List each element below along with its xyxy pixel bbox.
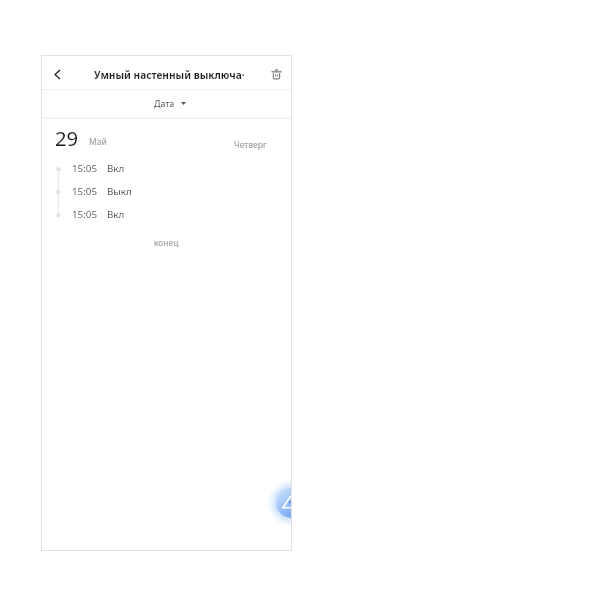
- staticText: Вкл: [107, 162, 125, 175]
- button[interactable]: 15:05: [42, 179, 291, 200]
- button[interactable]: Дата: [42, 91, 291, 118]
- staticText: Вкл: [107, 208, 125, 221]
- staticText: конец: [154, 237, 179, 249]
- button[interactable]: 15:05: [42, 156, 291, 177]
- staticText: Четверг: [234, 139, 267, 151]
- staticText: Дата: [154, 98, 175, 110]
- button[interactable]: Delete: [263, 61, 289, 87]
- button[interactable]: Add schedule: [276, 488, 291, 518]
- staticText: Май: [89, 136, 107, 148]
- staticText: 15:05: [72, 162, 98, 175]
- staticText: Умный настенный выключа·: [94, 68, 245, 82]
- button[interactable]: 15:05: [42, 202, 291, 223]
- staticText: 15:05: [72, 208, 98, 221]
- staticText: Выкл: [107, 185, 132, 198]
- staticText: 15:05: [72, 185, 98, 198]
- staticText: 29: [55, 124, 79, 152]
- button[interactable]: Back: [45, 62, 69, 86]
